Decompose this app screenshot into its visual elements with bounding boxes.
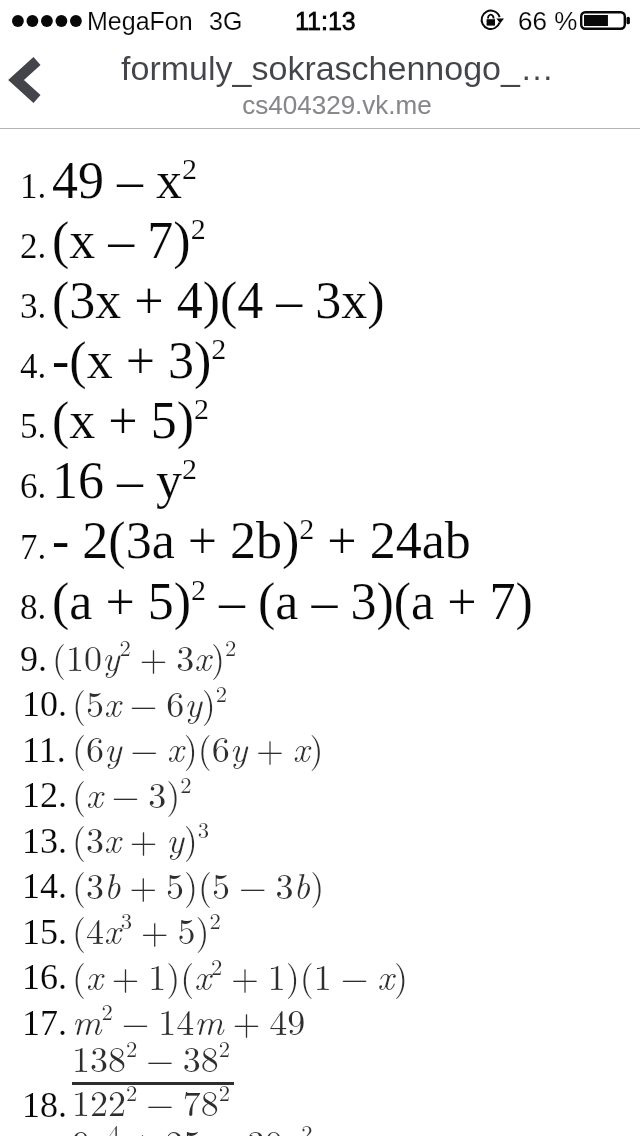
staticText: 7. [20,528,47,567]
staticText: cs404329.vk.me [242,90,432,119]
staticText: 9. [20,639,47,679]
staticText: - 2(3a + 2b)2 + 24ab [52,512,471,570]
staticText: 1382 − 382 [72,1031,231,1083]
staticText: MegaFon [87,7,193,35]
staticText: 2. [20,227,47,266]
staticText: 16 – y2 [52,452,197,510]
staticText: 11. [22,730,66,770]
staticText: 14. [22,866,67,906]
staticText: 1222 − 782 [72,1075,231,1127]
staticText: 13. [22,821,67,861]
staticText: 17. [22,1003,67,1043]
staticText: formuly_sokraschennogo_… [121,49,554,87]
staticText: 12. [22,775,67,815]
staticText: (x + 5)2 [52,392,209,450]
staticText: 9a4 + 25 − 30a2 [72,1115,313,1136]
staticText: (a + 5)2 – (a – 3)(a + 7) [52,573,533,631]
staticText: 66 % [518,6,578,35]
staticText: 4. [20,347,47,386]
staticText: (5x − 6y)2 [72,676,228,728]
staticText: 16. [22,957,67,997]
staticText: 6. [20,467,47,506]
staticText: (3x + 4)(4 – 3x) [52,272,385,330]
staticText: (10y2 + 3x)2 [52,630,237,682]
staticText: (x − 3)2 [72,767,192,819]
staticText: m2 − 14m + 49 [72,994,306,1046]
staticText: 3. [20,287,47,326]
staticText: (4x3 + 5)2 [72,903,221,955]
staticText: (3b + 5)(5 − 3b) [72,858,325,909]
staticText: 5. [20,407,47,446]
staticText: 11:13 [295,7,356,35]
staticText: (x + 1)(x2 + 1)(1 − x) [72,949,408,1001]
staticText: 49 – x2 [52,152,197,210]
staticText: 8. [20,588,47,627]
staticText: 15. [22,912,67,952]
staticText: (x – 7)2 [52,212,206,270]
staticText: 10. [22,684,67,724]
staticText: 3G [209,7,243,35]
staticText: (3x + y)3 [72,812,210,864]
staticText: 1. [20,167,47,206]
staticText: 18. [22,1085,67,1125]
staticText: (6y − x)(6y + x) [72,721,324,772]
button[interactable]: Back [2,49,58,107]
staticText: -(x + 3)2 [52,332,227,390]
